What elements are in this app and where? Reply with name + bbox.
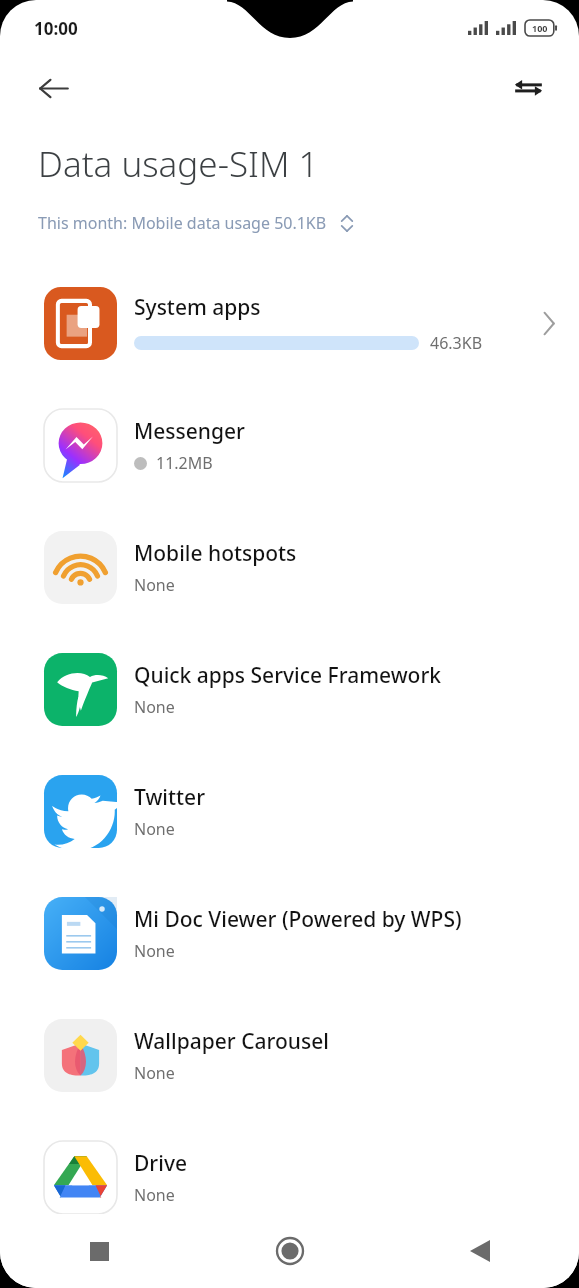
staticText: 46.3KB xyxy=(430,332,483,354)
staticText: None xyxy=(134,1184,175,1206)
staticText: 10:00 xyxy=(34,17,78,40)
button[interactable]: This month: Mobile data usage 50.1KB xyxy=(38,212,354,234)
button[interactable]: Quick apps Service Framework xyxy=(0,628,579,750)
button[interactable]: Switch data direction xyxy=(501,61,555,115)
staticText: This month: Mobile data usage 50.1KB xyxy=(38,212,327,234)
button[interactable]: Mi Doc Viewer (Powered by WPS) xyxy=(0,872,579,994)
staticText: Messenger xyxy=(134,417,245,446)
staticText: None xyxy=(134,574,175,596)
staticText: 100 xyxy=(532,22,548,34)
staticText: Mi Doc Viewer (Powered by WPS) xyxy=(134,905,462,934)
button[interactable]: System apps xyxy=(0,262,579,384)
staticText: None xyxy=(134,1062,175,1084)
button[interactable]: Wallpaper Carousel xyxy=(0,994,579,1116)
staticText: None xyxy=(134,940,175,962)
staticText: Wallpaper Carousel xyxy=(134,1027,329,1056)
staticText: System apps xyxy=(134,293,261,322)
staticText: Twitter xyxy=(134,783,206,812)
button[interactable]: Home xyxy=(261,1222,319,1280)
button[interactable]: Twitter xyxy=(0,750,579,872)
staticText: Data usage-SIM 1 xyxy=(38,140,319,188)
button[interactable]: Messenger xyxy=(0,384,579,506)
staticText: Quick apps Service Framework xyxy=(134,661,442,690)
staticText: Mobile hotspots xyxy=(134,539,297,568)
staticText: Drive xyxy=(134,1149,188,1178)
staticText: None xyxy=(134,696,175,718)
button[interactable]: Back xyxy=(26,61,80,115)
button[interactable]: Drive xyxy=(0,1116,579,1238)
button[interactable]: Mobile hotspots xyxy=(0,506,579,628)
staticText: None xyxy=(134,818,175,840)
button[interactable]: Back xyxy=(451,1222,509,1280)
button[interactable]: Recent apps xyxy=(70,1222,128,1280)
staticText: 11.2MB xyxy=(156,452,213,474)
